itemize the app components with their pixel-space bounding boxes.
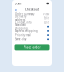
staticText: Same-day <box>15 37 26 41</box>
button[interactable]: Express shipping <box>12 29 52 33</box>
staticText: Contact info <box>15 21 32 24</box>
staticText: Priority mail <box>15 33 31 37</box>
button[interactable]: Same-day <box>12 37 52 41</box>
button[interactable]: Place order <box>14 44 49 50</box>
staticText: View <box>43 12 49 16</box>
staticText: Edit <box>44 21 49 24</box>
button[interactable]: Back <box>14 7 18 11</box>
staticText: Standard shipping <box>15 23 28 30</box>
button[interactable]: Contact info <box>12 20 52 25</box>
button[interactable]: Delivery address <box>12 16 52 20</box>
staticText: Express shipping <box>15 29 38 33</box>
staticText: ‹ <box>15 6 17 13</box>
staticText: Delivery address <box>15 15 26 22</box>
button[interactable]: Standard shipping <box>12 25 52 29</box>
staticText: Checkout <box>25 8 39 11</box>
button[interactable]: Order summary <box>12 12 52 16</box>
staticText: 9:41 <box>15 2 22 5</box>
staticText: Edit <box>44 16 49 20</box>
staticText: Place order <box>23 46 40 49</box>
staticText: Order summary <box>15 12 34 16</box>
button[interactable]: Priority mail <box>12 33 52 37</box>
